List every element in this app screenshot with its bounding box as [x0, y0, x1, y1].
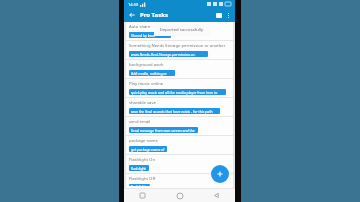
- staticText: Play music online: [129, 81, 164, 87]
- button[interactable]: Add media, nothing or background: [129, 70, 175, 76]
- button[interactable]: www.Needs-Real-Storage-permission-or-ano…: [129, 51, 208, 57]
- staticText: flashlight on: [131, 166, 147, 171]
- button[interactable]: Home: [161, 189, 198, 202]
- button[interactable]: Add task: [211, 165, 229, 183]
- staticText: Shared by local network: [131, 33, 169, 38]
- staticText: Pro Tasks: [140, 11, 168, 19]
- button[interactable]: quick play music and all the media playe…: [129, 89, 226, 95]
- staticText: Add media, nothing or background: [131, 71, 173, 76]
- staticText: quick play music and all the media playe…: [131, 90, 224, 95]
- button[interactable]: Back: [198, 189, 235, 202]
- staticText: get package name of the app: [131, 147, 165, 152]
- staticText: background work: [129, 62, 164, 68]
- button[interactable]: Recents: [124, 189, 161, 202]
- button[interactable]: Flashlight Off: [126, 174, 233, 188]
- staticText: Flashlight On: [129, 157, 155, 163]
- button[interactable]: flashlight off: [129, 184, 150, 186]
- staticText: Flashlight Off: [129, 176, 156, 182]
- button[interactable]: background work: [126, 60, 233, 78]
- button[interactable]: Shared by local network: [129, 32, 171, 38]
- button[interactable]: package name: [126, 136, 233, 154]
- staticText: 14:50: [128, 2, 139, 7]
- staticText: flashlight off: [131, 184, 148, 186]
- staticText: Send message from own screen and the mid…: [131, 128, 196, 133]
- staticText: package name: [129, 138, 158, 144]
- button[interactable]: Send message from own screen and the mid…: [129, 127, 198, 133]
- button[interactable]: More options: [224, 11, 233, 20]
- button[interactable]: Play music online: [126, 79, 233, 97]
- button[interactable]: Back: [127, 10, 137, 20]
- staticText: Auto share: [129, 24, 151, 30]
- button[interactable]: sharable save: [126, 98, 233, 116]
- staticText: send email: [129, 119, 151, 125]
- button[interactable]: Something Needs Storage permission or an…: [126, 41, 233, 59]
- button[interactable]: get package name of the app: [129, 146, 167, 152]
- staticText: save the final sounds that have exists -…: [131, 109, 218, 114]
- button[interactable]: Cast: [214, 10, 224, 20]
- button[interactable]: Flashlight On: [126, 155, 233, 173]
- button[interactable]: send email: [126, 117, 233, 135]
- staticText: sharable save: [129, 100, 156, 106]
- staticText: Something Needs Storage permission or an…: [129, 43, 226, 49]
- button[interactable]: Auto share: [126, 22, 233, 40]
- button[interactable]: save the final sounds that have exists -…: [129, 108, 220, 114]
- button[interactable]: flashlight on: [129, 165, 149, 171]
- staticText: Imported successfully: [160, 27, 204, 33]
- staticText: www.Needs-Real-Storage-permission-or-ano…: [131, 52, 206, 57]
